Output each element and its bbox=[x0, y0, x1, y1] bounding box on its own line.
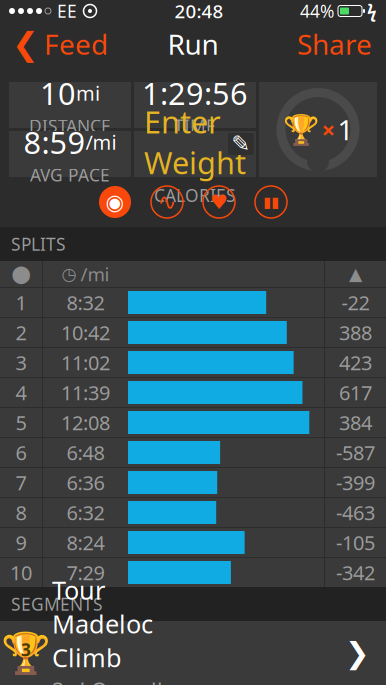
staticText: 20:48 bbox=[174, 0, 223, 23]
staticText: Share bbox=[297, 25, 372, 63]
button[interactable]: Map bbox=[95, 182, 135, 222]
staticText: ▲ bbox=[349, 264, 362, 284]
staticText: 423 bbox=[339, 349, 372, 376]
staticText: /mi bbox=[85, 129, 116, 155]
staticText: -105 bbox=[336, 529, 375, 556]
staticText: 7 bbox=[15, 469, 26, 496]
staticText: 10 bbox=[40, 73, 76, 113]
staticText: 6:32 bbox=[66, 499, 104, 526]
staticText: 8:24 bbox=[66, 529, 104, 556]
staticText: 1:29:56 bbox=[142, 73, 248, 113]
staticText: 8 bbox=[15, 499, 26, 526]
staticText: ∿ bbox=[157, 189, 176, 215]
button[interactable]: Splits chart bbox=[251, 182, 291, 222]
staticText: ▮▮ bbox=[263, 194, 279, 210]
staticText: 44% bbox=[300, 0, 334, 22]
staticText: ϟ bbox=[367, 0, 377, 22]
staticText: -342 bbox=[336, 559, 375, 586]
button[interactable]: Analysis bbox=[147, 182, 187, 222]
staticText: 11:39 bbox=[61, 379, 110, 406]
staticText: 8:32 bbox=[66, 289, 104, 316]
staticText: 3 bbox=[21, 638, 31, 661]
staticText: 3 bbox=[15, 349, 26, 376]
staticText: 6:48 bbox=[66, 439, 104, 466]
staticText: 10:42 bbox=[61, 319, 110, 346]
staticText: × bbox=[321, 114, 335, 145]
button[interactable]: 🏆 bbox=[0, 621, 386, 685]
staticText: CALORIES bbox=[154, 184, 236, 207]
staticText: 1 bbox=[15, 289, 26, 316]
staticText: 12:08 bbox=[61, 409, 110, 436]
staticText: 384 bbox=[339, 409, 372, 436]
staticText: -399 bbox=[336, 469, 375, 496]
staticText: Feed bbox=[44, 25, 108, 63]
staticText: 6:36 bbox=[66, 469, 104, 496]
button[interactable]: Share bbox=[283, 22, 386, 66]
staticText: SEGMENTS bbox=[11, 592, 103, 615]
button[interactable]: ❮ bbox=[0, 22, 120, 66]
staticText: 4 bbox=[15, 379, 26, 406]
staticText: 2 bbox=[15, 319, 26, 346]
staticText: ◉ bbox=[105, 190, 124, 214]
staticText: 9 bbox=[15, 529, 26, 556]
staticText: 11:02 bbox=[61, 349, 110, 376]
staticText: 🏆 bbox=[1, 630, 51, 676]
staticText: ♥ bbox=[210, 191, 228, 213]
staticText: -587 bbox=[336, 439, 375, 466]
staticText: 617 bbox=[339, 379, 372, 406]
staticText: 🏆 bbox=[282, 113, 319, 146]
staticText: 3rd Overall - 11:51 bbox=[52, 676, 176, 685]
staticText: 7:29 bbox=[66, 559, 104, 586]
staticText: SPLITS bbox=[11, 232, 66, 255]
staticText: 8:59 bbox=[23, 122, 85, 162]
staticText: DISTANCE bbox=[29, 114, 111, 137]
button[interactable]: Heart rate bbox=[199, 182, 239, 222]
staticText: TIME bbox=[174, 114, 216, 137]
staticText: AVG PACE bbox=[30, 163, 110, 186]
staticText: Tour Madeloc Climb bbox=[52, 573, 153, 674]
staticText: 10 bbox=[10, 559, 32, 586]
staticText: -463 bbox=[336, 499, 375, 526]
staticText: ✎ bbox=[231, 131, 250, 157]
staticText: mi bbox=[76, 80, 100, 106]
staticText: 5 bbox=[15, 409, 26, 436]
staticText: ⬤ bbox=[11, 264, 30, 284]
staticText: 388 bbox=[339, 319, 372, 346]
staticText: ❯ bbox=[345, 636, 370, 670]
staticText: Enter Weight bbox=[144, 101, 246, 183]
staticText: ❮ bbox=[12, 26, 39, 62]
staticText: 6 bbox=[15, 439, 26, 466]
staticText: /mi bbox=[80, 262, 109, 286]
staticText: Run bbox=[167, 25, 218, 63]
staticText: EE bbox=[57, 0, 77, 22]
staticText: ◷ bbox=[61, 264, 76, 284]
staticText: 1 bbox=[337, 111, 353, 148]
staticText: -22 bbox=[341, 289, 369, 316]
